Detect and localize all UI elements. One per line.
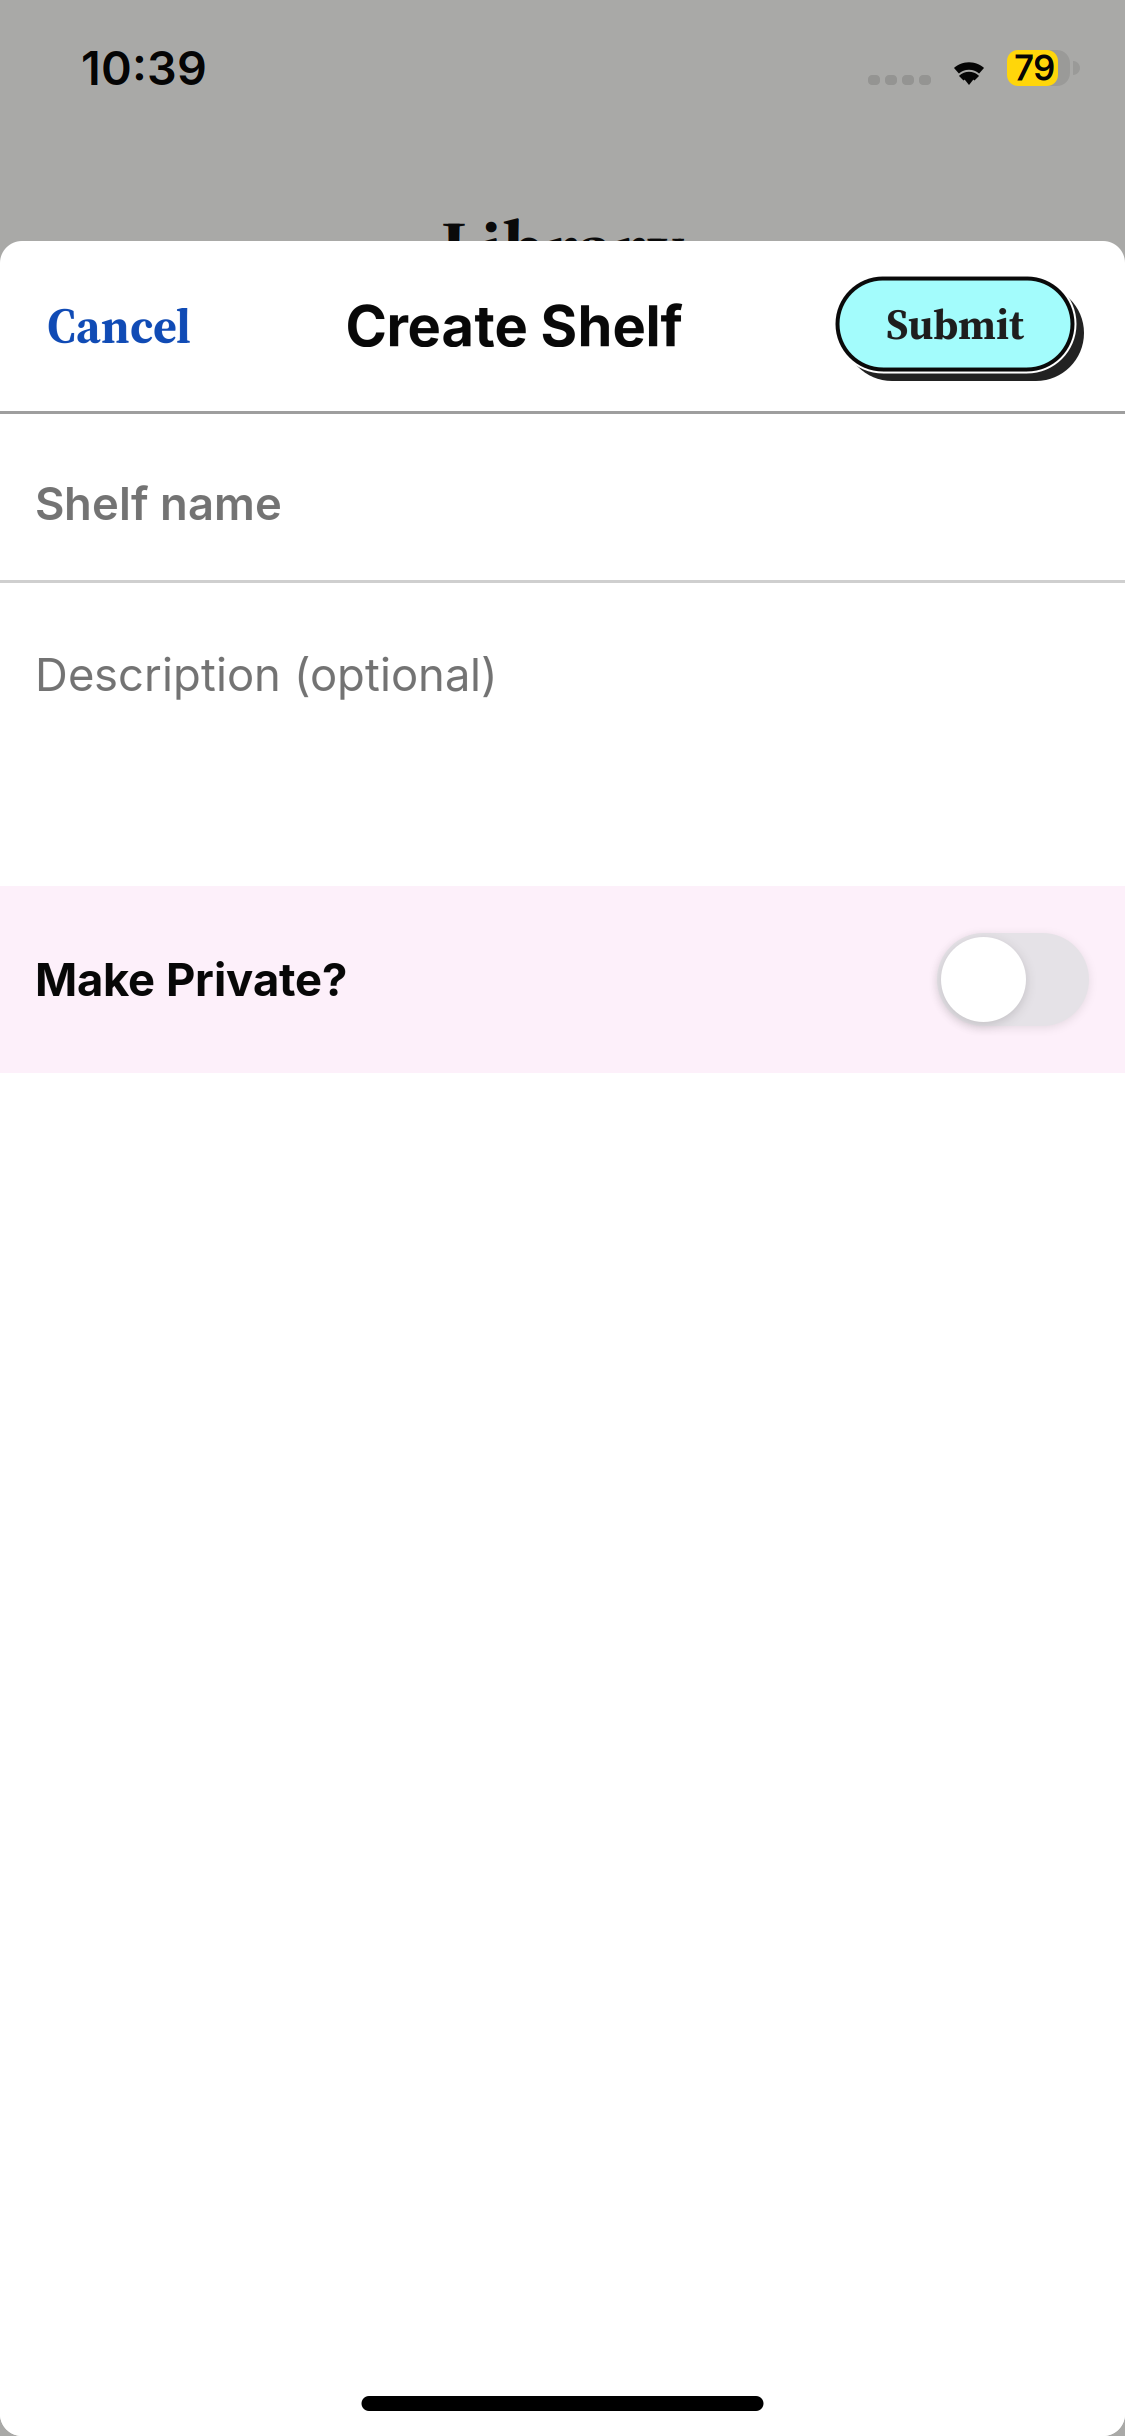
staticText: Library (441, 195, 684, 299)
staticText: Cancel (47, 293, 191, 359)
staticText: Make Private? (35, 952, 347, 1007)
staticText: 10:39 (81, 40, 207, 96)
button[interactable]: Make Private? (0, 886, 1125, 1073)
button[interactable]: Submit (809, 272, 1125, 380)
staticText: Create Shelf (345, 292, 682, 360)
staticText: Submit (886, 295, 1024, 353)
staticText: 79 (1014, 47, 1054, 89)
staticText: Description (optional) (35, 647, 498, 702)
staticText: Shelf name (35, 476, 282, 531)
button[interactable]: Cancel (0, 267, 213, 385)
